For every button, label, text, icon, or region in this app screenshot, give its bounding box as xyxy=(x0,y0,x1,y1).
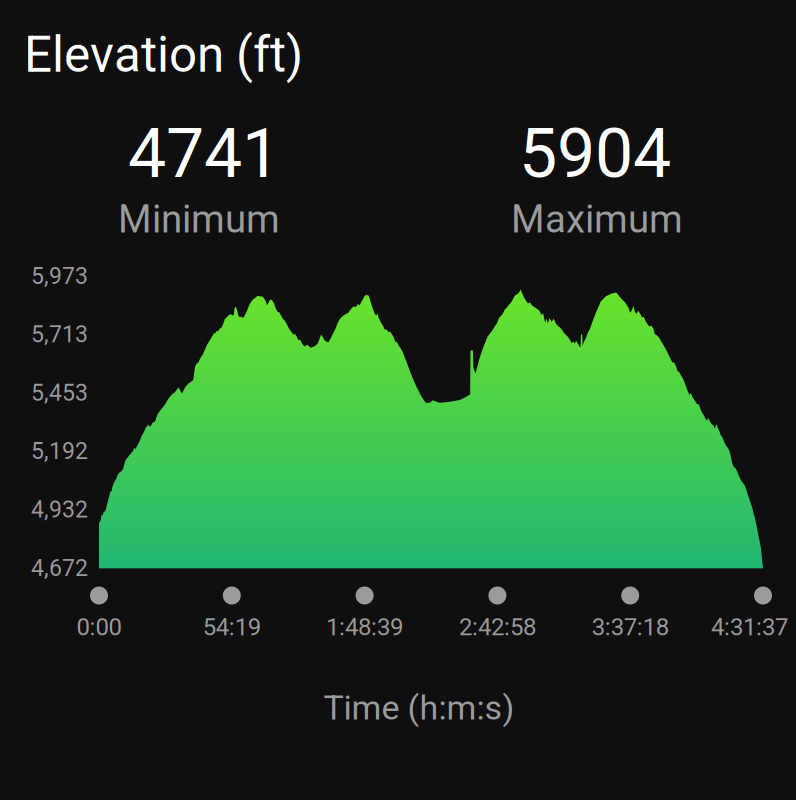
staticText: 4,672 xyxy=(31,554,88,581)
staticText: 54:19 xyxy=(203,613,261,641)
staticText: Time (h:m:s) xyxy=(323,688,514,728)
staticText: 1:48:39 xyxy=(326,613,403,641)
button[interactable]: Elevation chart xyxy=(99,276,763,568)
staticText: 5,973 xyxy=(31,262,88,289)
staticText: 5,713 xyxy=(31,321,88,348)
staticText: 3:37:18 xyxy=(592,613,669,641)
staticText: 5,453 xyxy=(31,379,88,406)
staticText: 4,932 xyxy=(31,496,88,523)
staticText: 5,192 xyxy=(31,438,88,465)
staticText: Minimum xyxy=(118,197,280,242)
staticText: 5904 xyxy=(519,114,671,194)
staticText: 2:42:58 xyxy=(459,613,536,641)
staticText: 0:00 xyxy=(76,613,121,641)
staticText: 4:31:37 xyxy=(711,613,788,641)
staticText: Maximum xyxy=(511,197,683,242)
staticText: Elevation (ft) xyxy=(24,26,303,84)
staticText: 4741 xyxy=(128,114,280,194)
